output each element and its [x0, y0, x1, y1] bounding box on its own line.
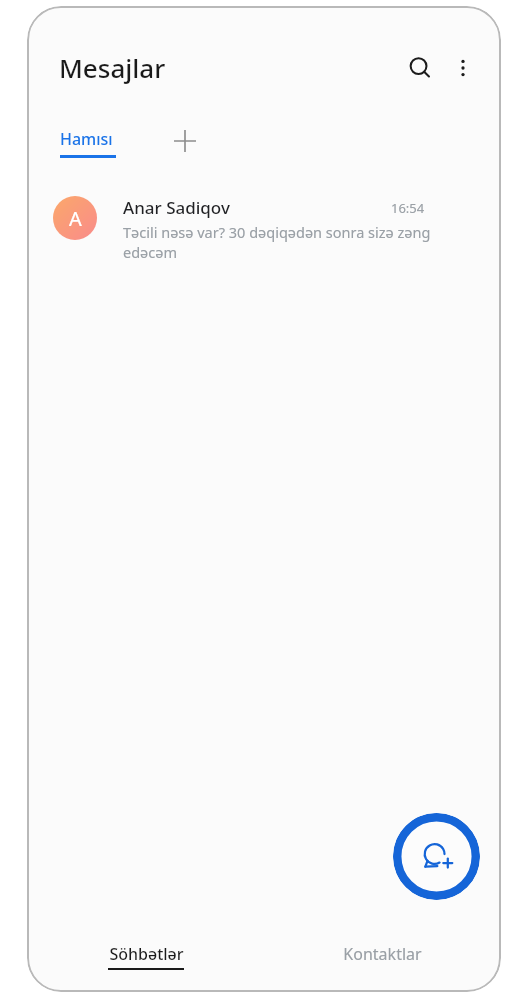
- button[interactable]: A: [27, 186, 501, 276]
- button[interactable]: Kontaktlar: [264, 943, 501, 970]
- staticText: Anar Sadiqov: [123, 196, 230, 219]
- button[interactable]: Söhbətlər: [27, 943, 264, 970]
- button[interactable]: Search: [396, 44, 444, 92]
- staticText: Hamısı: [60, 128, 113, 150]
- staticText: Təcili nəsə var? 30 dəqiqədən sonra sizə…: [123, 222, 443, 262]
- button[interactable]: Hamısı: [55, 124, 121, 162]
- button[interactable]: New conversation: [393, 813, 480, 900]
- button[interactable]: More options: [439, 44, 487, 92]
- staticText: 16:54: [391, 199, 425, 217]
- staticText: A: [69, 205, 82, 232]
- staticText: Mesajlar: [59, 50, 166, 85]
- staticText: Kontaktlar: [343, 943, 422, 965]
- button[interactable]: Add tab: [162, 118, 208, 164]
- staticText: Söhbətlər: [109, 943, 184, 965]
